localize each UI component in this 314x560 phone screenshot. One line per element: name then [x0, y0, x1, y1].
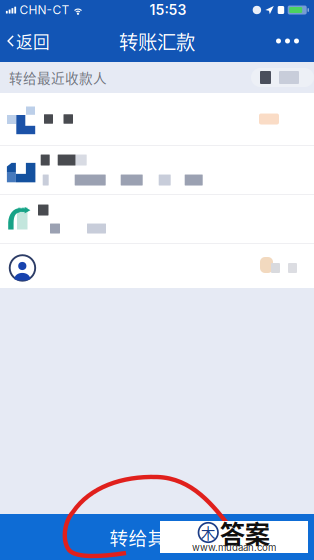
button[interactable]: 返回 — [0, 20, 58, 62]
staticText: 木 — [201, 522, 216, 543]
staticText: www.mudaan.com — [192, 542, 276, 553]
button[interactable] — [0, 93, 314, 145]
staticText: 转给其他人 — [109, 523, 204, 550]
staticText: 转给最近收款人 — [9, 68, 107, 87]
button[interactable] — [0, 244, 314, 288]
staticText: 15:53 — [149, 1, 186, 18]
button[interactable]: More — [264, 20, 314, 62]
button[interactable]: Filter — [251, 68, 314, 87]
staticText: 转账汇款 — [119, 27, 195, 55]
staticText: 答案 — [220, 514, 270, 551]
button[interactable] — [0, 146, 314, 194]
button[interactable] — [0, 195, 314, 243]
button[interactable]: 转给其他人 — [0, 514, 314, 560]
staticText: CHN-CT — [19, 3, 69, 17]
staticText: 返回 — [16, 29, 50, 53]
